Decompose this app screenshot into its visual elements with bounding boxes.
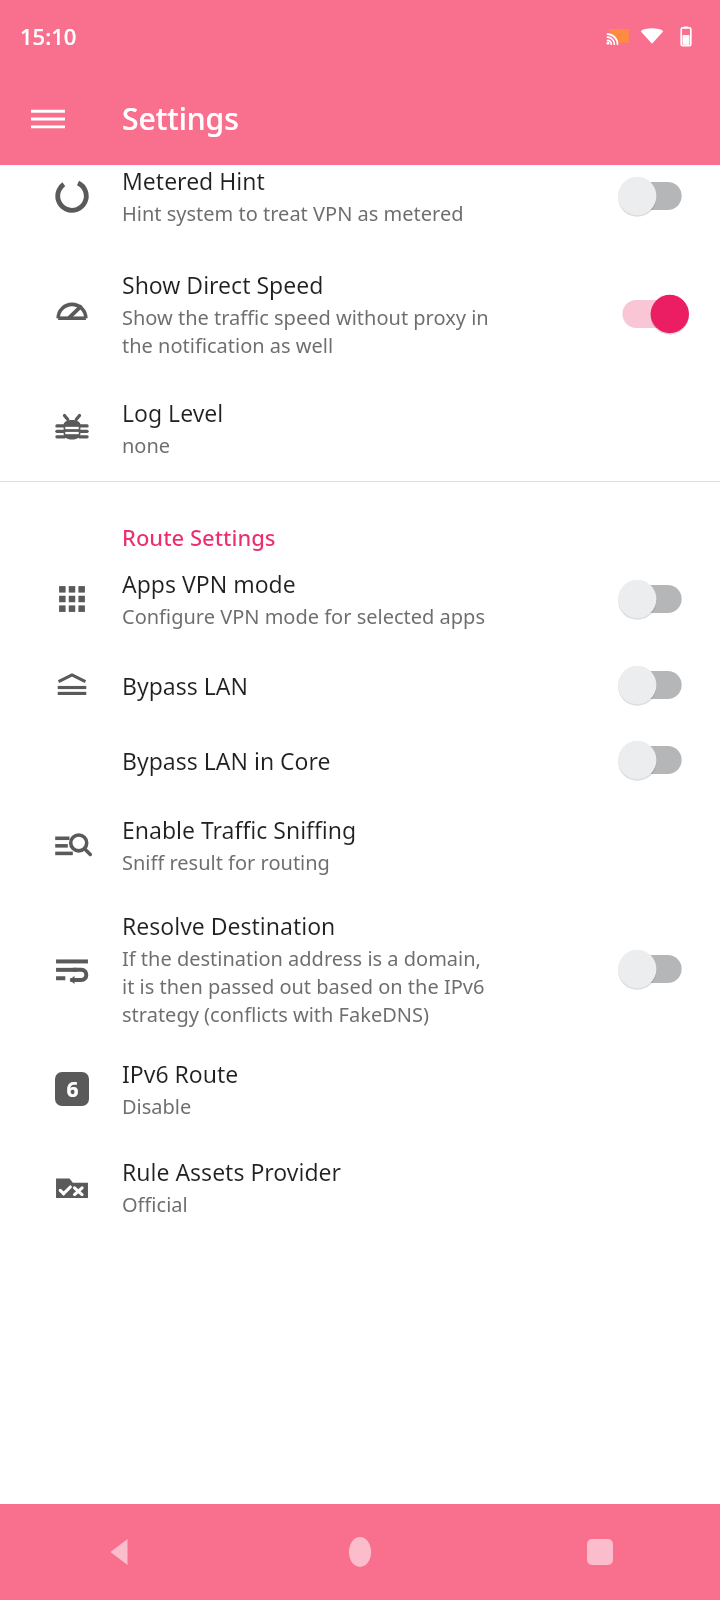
staticText: Route Settings xyxy=(122,522,276,552)
button[interactable]: 6 xyxy=(0,1044,720,1140)
staticText: Metered Hint xyxy=(122,165,265,196)
button[interactable]: Toggle on xyxy=(618,294,692,334)
button[interactable]: Open navigation menu xyxy=(22,93,74,145)
button[interactable]: Toggle off xyxy=(618,949,692,989)
button[interactable]: Rule Assets Provider xyxy=(0,1140,720,1238)
staticText: Disable xyxy=(122,1093,192,1120)
staticText: Settings xyxy=(122,98,239,139)
button[interactable]: Resolve Destination xyxy=(0,896,720,1044)
staticText: Show the traffic speed without proxy in … xyxy=(122,304,489,359)
staticText: Show Direct Speed xyxy=(122,269,324,300)
staticText: none xyxy=(122,432,171,459)
staticText: 6 xyxy=(66,1075,79,1104)
staticText: Resolve Destination xyxy=(122,910,336,941)
button[interactable]: Bypass LAN xyxy=(0,650,720,724)
button[interactable]: Toggle off xyxy=(618,740,692,780)
button[interactable]: Toggle off xyxy=(618,665,692,705)
button[interactable]: Toggle off xyxy=(618,176,692,216)
button[interactable]: Home xyxy=(240,1504,480,1600)
staticText: Configure VPN mode for selected apps xyxy=(122,603,485,630)
staticText: Bypass LAN xyxy=(122,670,248,701)
staticText: Apps VPN mode xyxy=(122,568,296,599)
staticText: 15:10 xyxy=(20,21,77,51)
button[interactable]: Recent apps xyxy=(480,1504,720,1600)
button[interactable]: Toggle off xyxy=(618,579,692,619)
button[interactable]: Bypass LAN in Core xyxy=(0,724,720,798)
staticText: Enable Traffic Sniffing xyxy=(122,814,357,845)
staticText: Sniff result for routing xyxy=(122,849,330,876)
staticText: Official xyxy=(122,1191,188,1218)
button[interactable]: Show Direct Speed xyxy=(0,249,720,379)
staticText: Log Level xyxy=(122,397,224,428)
staticText: If the destination address is a domain, … xyxy=(122,945,485,1028)
button[interactable]: Apps VPN mode xyxy=(0,562,720,650)
staticText: Hint system to treat VPN as metered xyxy=(122,200,464,227)
button[interactable]: Enable Traffic Sniffing xyxy=(0,798,720,896)
button[interactable]: Log Level xyxy=(0,379,720,481)
staticText: Bypass LAN in Core xyxy=(122,745,331,776)
button[interactable]: Metered Hint xyxy=(0,165,720,249)
staticText: IPv6 Route xyxy=(122,1058,239,1089)
button[interactable]: Back xyxy=(0,1504,240,1600)
staticText: Rule Assets Provider xyxy=(122,1156,342,1187)
